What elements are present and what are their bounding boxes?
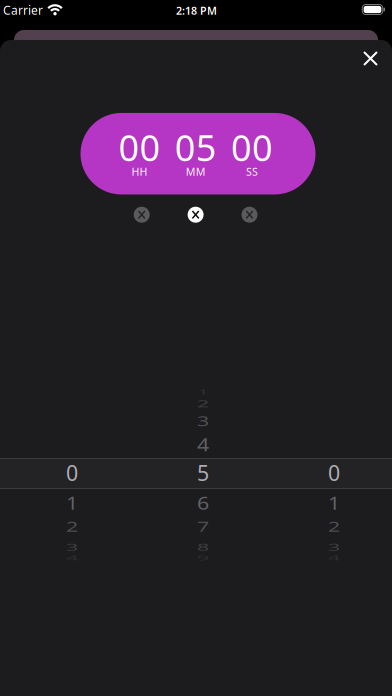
staticText: HH — [131, 165, 147, 179]
staticText: 4 — [328, 544, 340, 572]
staticText: 3 — [66, 533, 78, 561]
staticText: 2 — [328, 512, 340, 541]
staticText: 9 — [197, 544, 209, 572]
button[interactable] — [241, 207, 257, 223]
staticText: 3 — [197, 407, 209, 435]
staticText: 3 — [328, 533, 340, 561]
staticText: 0 — [66, 458, 78, 487]
staticText: 1 — [197, 378, 209, 406]
staticText: 4 — [66, 544, 78, 572]
staticText: 0 — [328, 458, 340, 487]
staticText: 6 — [197, 489, 209, 517]
button[interactable] — [188, 207, 204, 223]
staticText: 2 — [66, 512, 78, 541]
staticText: MM — [186, 165, 206, 179]
staticText: 1 — [328, 489, 340, 517]
staticText: 7 — [197, 512, 209, 541]
staticText: 00 — [118, 123, 160, 171]
button[interactable] — [134, 207, 150, 223]
button[interactable] — [360, 48, 381, 69]
staticText: 4 — [197, 430, 209, 459]
staticText: 05 — [175, 123, 217, 171]
staticText: 8 — [197, 533, 209, 561]
staticText: 00 — [231, 123, 273, 171]
staticText: 2 — [197, 389, 209, 418]
staticText: 5 — [197, 458, 209, 487]
staticText: Carrier — [3, 2, 43, 18]
staticText: 1 — [66, 489, 78, 517]
staticText: 2:18 PM — [176, 3, 217, 18]
staticText: SS — [246, 165, 258, 179]
